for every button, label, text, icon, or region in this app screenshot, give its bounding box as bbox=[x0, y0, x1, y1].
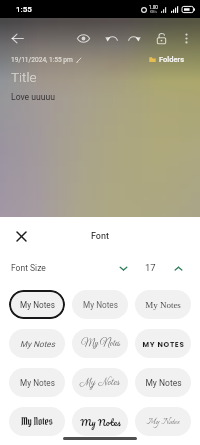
staticText: Font bbox=[91, 231, 109, 242]
staticText: My Notes bbox=[80, 376, 120, 389]
staticText: My Notes bbox=[145, 378, 182, 388]
staticText: My Notes bbox=[80, 414, 121, 430]
button[interactable]: MY NOTES bbox=[135, 329, 191, 358]
button[interactable]: Preview bbox=[72, 27, 94, 49]
button[interactable]: My Notes bbox=[72, 329, 128, 358]
staticText: My Notes bbox=[21, 415, 53, 428]
button[interactable]: My Notes bbox=[135, 407, 191, 436]
button[interactable]: My Notes bbox=[9, 290, 65, 319]
button[interactable]: Redo bbox=[123, 27, 145, 49]
button[interactable]: Close bbox=[11, 226, 31, 246]
staticText: MY NOTES bbox=[142, 339, 185, 349]
staticText: 19/11/2024, 1:55 pm bbox=[11, 56, 73, 64]
button[interactable]: Undo bbox=[100, 27, 122, 49]
staticText: My Notes bbox=[81, 338, 120, 350]
button[interactable]: Increase font size bbox=[169, 259, 187, 277]
staticText: Font Size bbox=[11, 263, 46, 273]
staticText: Folders bbox=[159, 55, 185, 64]
button[interactable]: More options bbox=[175, 27, 197, 49]
button[interactable]: My Notes bbox=[9, 368, 65, 397]
staticText: My Notes bbox=[145, 300, 181, 310]
staticText: 1:55 bbox=[16, 5, 32, 14]
staticText: My Notes bbox=[20, 378, 55, 388]
button[interactable]: My Notes bbox=[135, 290, 191, 319]
staticText: Title bbox=[11, 69, 37, 85]
button[interactable]: My Notes bbox=[72, 407, 128, 436]
staticText: My Notes bbox=[83, 300, 118, 310]
button[interactable]: My Notes bbox=[72, 368, 128, 397]
button[interactable]: My Notes bbox=[72, 290, 128, 319]
button[interactable]: My Notes bbox=[135, 368, 191, 397]
button[interactable]: Folders bbox=[148, 55, 186, 64]
button[interactable]: Back bbox=[6, 27, 28, 49]
button[interactable]: My Notes bbox=[9, 407, 65, 436]
staticText: My Notes bbox=[146, 415, 180, 429]
button[interactable]: Decrease font size bbox=[114, 259, 132, 277]
staticText: KB/s bbox=[150, 10, 157, 14]
staticText: 1.00 bbox=[149, 5, 158, 10]
staticText: Love uuuuu bbox=[11, 92, 55, 102]
staticText: My Notes bbox=[20, 339, 55, 349]
button[interactable]: Lock note bbox=[150, 27, 172, 49]
staticText: My Notes bbox=[20, 300, 55, 310]
staticText: 17 bbox=[145, 262, 156, 273]
button[interactable]: My Notes bbox=[9, 329, 65, 358]
